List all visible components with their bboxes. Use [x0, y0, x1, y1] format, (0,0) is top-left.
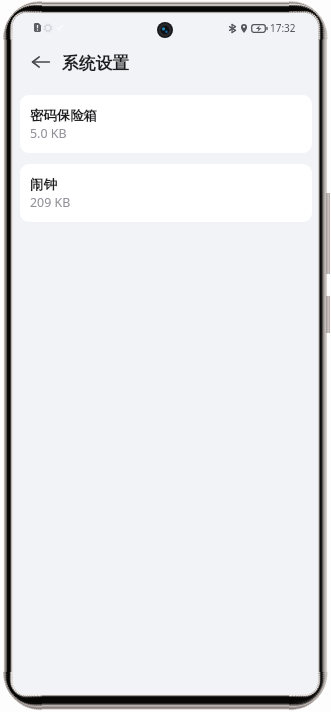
staticText: 闹钟	[30, 176, 57, 193]
button[interactable]: 闹钟	[20, 164, 312, 222]
staticText: 209 KB	[30, 194, 71, 211]
staticText: 17:32	[270, 21, 296, 35]
staticText: 密码保险箱	[30, 107, 97, 124]
staticText: 系统设置	[62, 53, 129, 74]
button[interactable]: Back	[28, 49, 54, 75]
button[interactable]: 密码保险箱	[20, 95, 312, 153]
staticText: 5.0 KB	[30, 125, 67, 142]
